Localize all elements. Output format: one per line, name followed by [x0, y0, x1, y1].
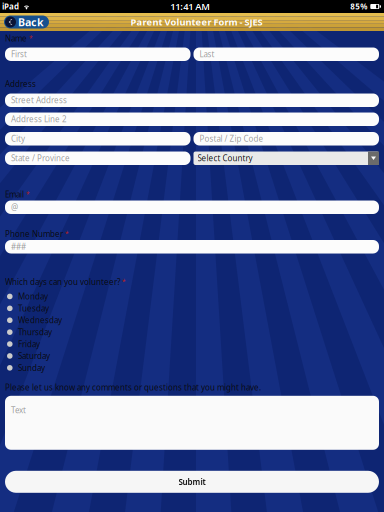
staticText: Parent Volunteer Form - SJES	[130, 16, 262, 28]
staticText: *	[63, 229, 69, 238]
staticText: Monday	[18, 291, 48, 302]
button[interactable]: Submit	[5, 471, 379, 493]
staticText: Name	[5, 33, 27, 44]
staticText: Back	[18, 15, 44, 29]
staticText: Saturday	[18, 351, 50, 361]
staticText: City	[11, 133, 25, 144]
staticText: Text	[11, 405, 26, 415]
staticText: Address	[5, 79, 36, 89]
staticText: Wednesday	[18, 315, 62, 325]
staticText: Submit	[178, 476, 205, 487]
staticText: Street Address	[11, 95, 67, 105]
staticText: 85%	[350, 1, 367, 12]
staticText: ###	[11, 241, 26, 252]
staticText: Sunday	[18, 362, 45, 373]
staticText: Please let us know any comments or quest…	[5, 382, 261, 393]
staticText: Last	[199, 49, 214, 59]
button[interactable]: Wednesday	[5, 314, 379, 326]
staticText: *	[27, 33, 33, 42]
staticText: Select Country	[197, 153, 252, 163]
staticText: State / Province	[11, 153, 70, 163]
staticText: Postal / Zip Code	[199, 133, 263, 144]
staticText: Friday	[18, 339, 40, 349]
button[interactable]: Monday	[5, 290, 379, 302]
staticText: iPad	[2, 1, 19, 12]
button[interactable]: Friday	[5, 338, 379, 350]
staticText: Phone Number	[5, 229, 63, 239]
staticText: First	[11, 49, 27, 59]
button[interactable]: Tuesday	[5, 302, 379, 314]
staticText: 11:41 AM	[170, 0, 210, 13]
button[interactable]: Back	[4, 15, 49, 28]
staticText: Which days can you volunteer?	[5, 277, 120, 287]
staticText: Email	[5, 189, 24, 200]
staticText: *	[120, 277, 126, 286]
button[interactable]: Select Country	[193, 151, 379, 165]
button[interactable]: Saturday	[5, 350, 379, 362]
button[interactable]: Thursday	[5, 326, 379, 338]
staticText: Thursday	[18, 327, 52, 337]
staticText: @	[11, 202, 18, 212]
button[interactable]: Sunday	[5, 362, 379, 374]
staticText: *	[24, 189, 30, 198]
staticText: Address Line 2	[11, 114, 67, 124]
staticText: Tuesday	[18, 303, 49, 314]
